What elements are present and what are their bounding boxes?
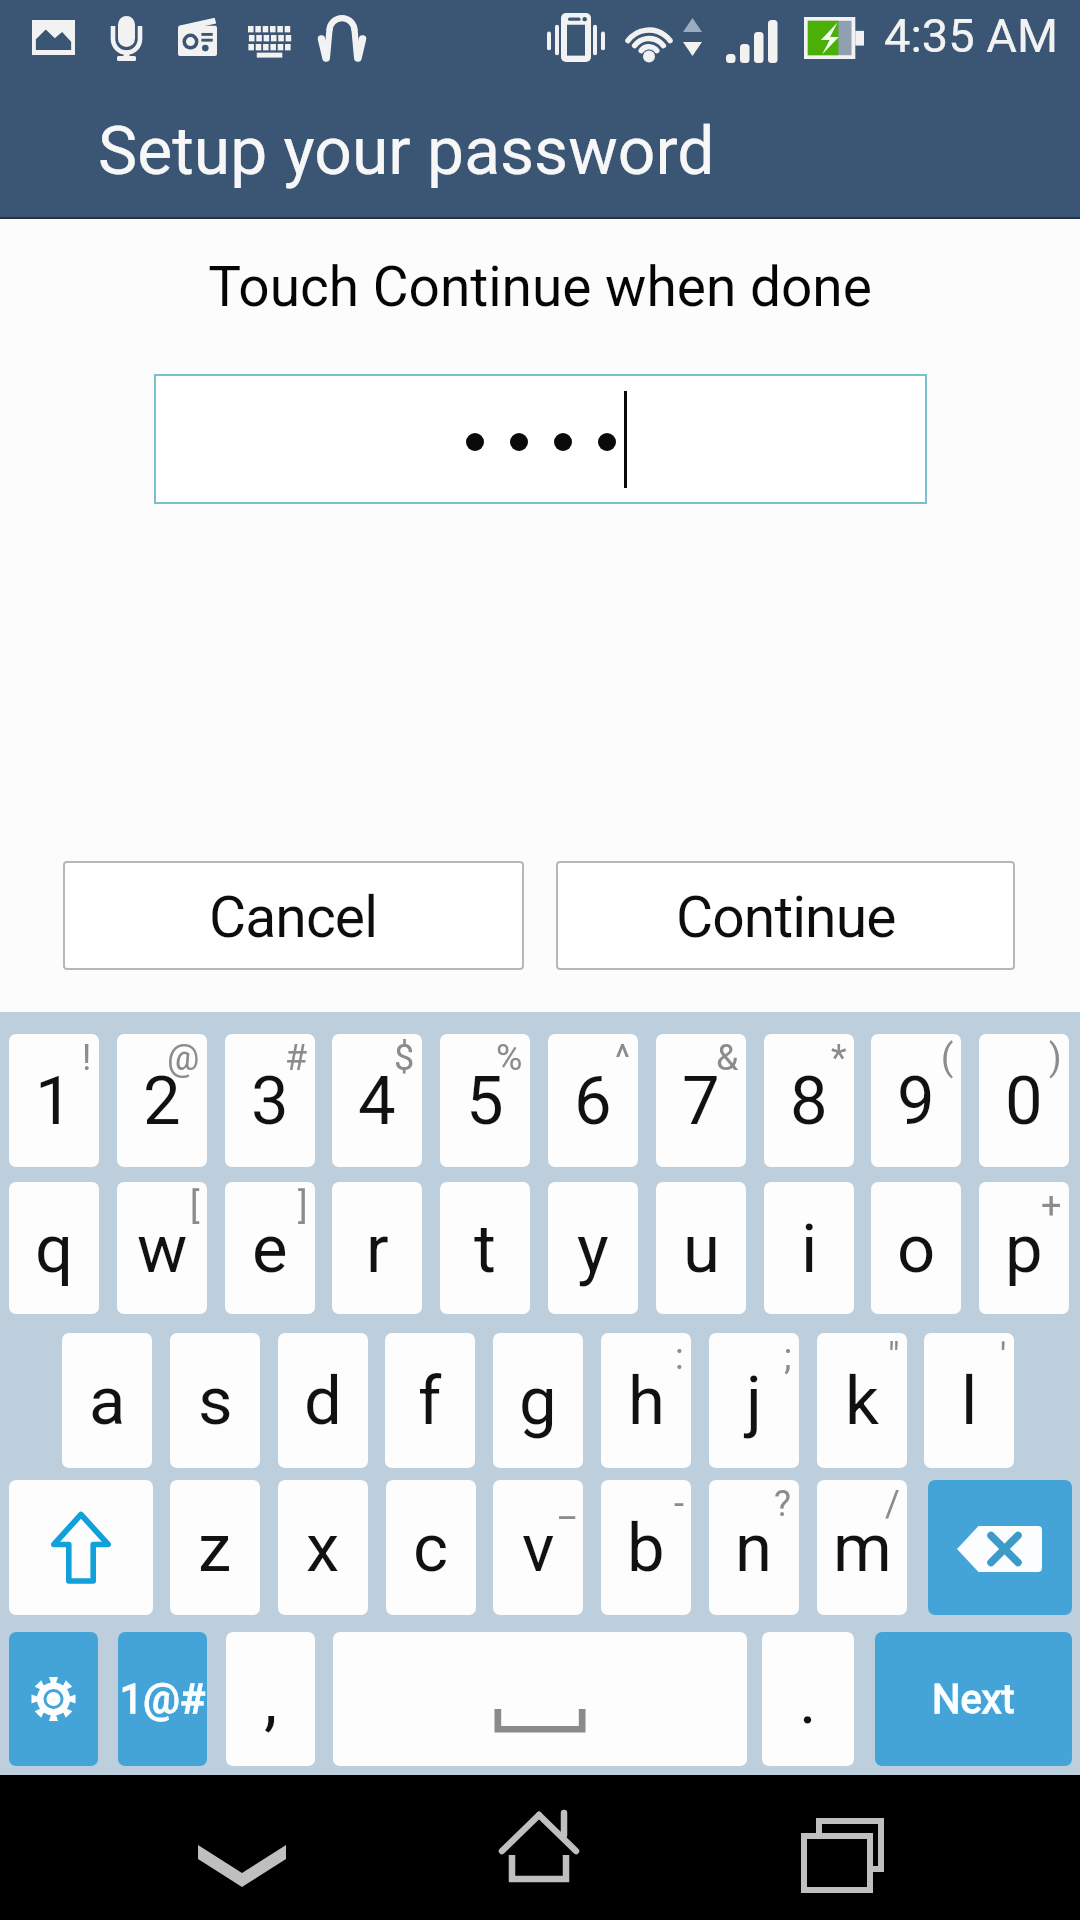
button[interactable]: Shift xyxy=(9,1480,153,1615)
button[interactable]: x xyxy=(278,1480,368,1615)
button[interactable]: - xyxy=(601,1480,691,1615)
staticText: j xyxy=(746,1362,763,1441)
staticText: ) xyxy=(1049,1037,1062,1079)
staticText: @ xyxy=(167,1037,200,1079)
button[interactable]: i xyxy=(764,1182,854,1314)
staticText: ' xyxy=(1000,1336,1007,1378)
staticText: x xyxy=(306,1509,340,1588)
button[interactable]: Backspace xyxy=(928,1480,1072,1615)
button[interactable]: q xyxy=(9,1182,99,1314)
button[interactable]: * xyxy=(764,1034,854,1167)
button[interactable]: $ xyxy=(332,1034,422,1167)
staticText: ] xyxy=(298,1185,308,1227)
staticText: " xyxy=(888,1336,900,1378)
button[interactable]: , xyxy=(226,1632,315,1766)
button[interactable]: ] xyxy=(225,1182,315,1314)
button[interactable]: g xyxy=(493,1333,583,1468)
staticText: a xyxy=(89,1362,126,1441)
button[interactable]: Recent apps xyxy=(749,1775,934,1920)
button[interactable]: [ xyxy=(117,1182,207,1314)
staticText: 5 xyxy=(466,1062,504,1141)
staticText: 3 xyxy=(251,1062,289,1141)
button[interactable]: a xyxy=(62,1333,152,1468)
staticText: p xyxy=(1005,1210,1043,1289)
staticText: 1 xyxy=(35,1062,73,1141)
button[interactable]: r xyxy=(332,1182,422,1314)
button[interactable]: ! xyxy=(9,1034,99,1167)
staticText: 4:35 AM xyxy=(884,8,1058,63)
staticText: 4 xyxy=(358,1062,396,1141)
staticText: Touch Continue when done xyxy=(0,255,1080,319)
button[interactable]: ? xyxy=(709,1480,799,1615)
staticText: q xyxy=(35,1210,74,1289)
staticText: ( xyxy=(941,1037,954,1079)
button[interactable]: : xyxy=(601,1333,691,1468)
button[interactable]: Home xyxy=(447,1775,632,1920)
staticText: ^ xyxy=(615,1037,631,1079)
button[interactable]: Cancel xyxy=(63,861,524,970)
staticText: $ xyxy=(394,1037,415,1079)
button[interactable]: # xyxy=(225,1034,315,1167)
staticText: c xyxy=(413,1509,449,1588)
staticText: d xyxy=(304,1362,342,1441)
button[interactable]: Space xyxy=(333,1632,747,1766)
button[interactable]: o xyxy=(871,1182,961,1314)
button[interactable]: / xyxy=(817,1480,907,1615)
staticText: 7 xyxy=(682,1062,720,1141)
button[interactable]: @ xyxy=(117,1034,207,1167)
button[interactable]: y xyxy=(548,1182,638,1314)
staticText: [ xyxy=(190,1185,200,1227)
staticText: # xyxy=(285,1037,308,1079)
button[interactable]: t xyxy=(440,1182,530,1314)
button[interactable]: . xyxy=(762,1632,854,1766)
staticText: r xyxy=(366,1210,389,1289)
button[interactable]: Continue xyxy=(556,861,1015,970)
staticText: i xyxy=(801,1210,818,1289)
staticText: u xyxy=(683,1210,720,1289)
staticText: Continue xyxy=(676,884,896,951)
staticText: Next xyxy=(932,1676,1015,1723)
staticText: : xyxy=(675,1336,684,1378)
staticText: l xyxy=(961,1362,978,1441)
button[interactable]: _ xyxy=(493,1480,583,1615)
staticText: v xyxy=(522,1509,555,1588)
staticText: & xyxy=(716,1037,739,1079)
button[interactable]: z xyxy=(170,1480,260,1615)
staticText: h xyxy=(628,1362,665,1441)
button[interactable]: d xyxy=(278,1333,368,1468)
button[interactable]: s xyxy=(170,1333,260,1468)
staticText: k xyxy=(845,1362,879,1441)
staticText: y xyxy=(577,1210,609,1289)
button[interactable]: % xyxy=(440,1034,530,1167)
button[interactable]: ( xyxy=(871,1034,961,1167)
button[interactable]: ' xyxy=(924,1333,1014,1468)
staticText: b xyxy=(627,1509,665,1588)
button[interactable]: c xyxy=(386,1480,476,1615)
staticText: 6 xyxy=(574,1062,612,1141)
staticText: e xyxy=(252,1210,288,1289)
staticText: / xyxy=(885,1483,900,1525)
button[interactable]: u xyxy=(656,1182,746,1314)
button[interactable]: f xyxy=(385,1333,475,1468)
button[interactable]: Settings xyxy=(9,1632,98,1766)
button[interactable]: ; xyxy=(709,1333,799,1468)
button[interactable]: Symbols xyxy=(118,1632,207,1766)
staticText: m xyxy=(833,1509,892,1588)
button[interactable]: " xyxy=(817,1333,907,1468)
button[interactable] xyxy=(154,374,927,504)
staticText: _ xyxy=(559,1483,576,1525)
button[interactable]: & xyxy=(656,1034,746,1167)
button[interactable]: + xyxy=(979,1182,1069,1314)
staticText: 8 xyxy=(790,1062,828,1141)
button[interactable]: ^ xyxy=(548,1034,638,1167)
button[interactable]: Back xyxy=(150,1775,335,1920)
staticText: 9 xyxy=(897,1062,935,1141)
staticText: , xyxy=(264,1661,278,1740)
staticText: w xyxy=(137,1210,188,1289)
staticText: t xyxy=(474,1210,496,1289)
staticText: ! xyxy=(82,1037,92,1079)
staticText: s xyxy=(198,1362,233,1441)
button[interactable]: ) xyxy=(979,1034,1069,1167)
button[interactable]: Next xyxy=(875,1632,1072,1766)
staticText: + xyxy=(1041,1185,1062,1227)
